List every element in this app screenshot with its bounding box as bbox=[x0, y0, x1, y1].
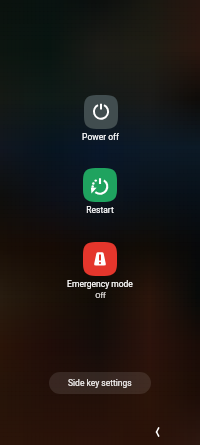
staticText: Side key settings bbox=[68, 378, 132, 388]
button[interactable]: Power off bbox=[74, 95, 127, 142]
staticText: Off bbox=[95, 291, 106, 300]
button[interactable]: Restart bbox=[75, 168, 125, 215]
staticText: Emergency mode bbox=[67, 279, 133, 289]
button[interactable]: Back bbox=[145, 420, 169, 444]
staticText: Restart bbox=[86, 205, 114, 215]
button[interactable]: Side key settings bbox=[49, 372, 151, 394]
button[interactable]: Emergency mode bbox=[59, 242, 141, 300]
staticText: Power off bbox=[82, 132, 119, 142]
